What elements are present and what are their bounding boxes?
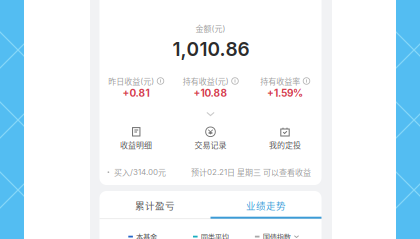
staticText: +1.59% xyxy=(267,87,303,99)
staticText: 预计02.21日 星期三 可以查看收益 xyxy=(191,166,311,178)
staticText: 1,010.86 xyxy=(172,37,249,60)
staticText: 业绩走势 xyxy=(246,198,286,212)
staticText: 买入/314.00元 xyxy=(114,166,166,178)
button[interactable]: 累计盈亏 xyxy=(99,191,210,219)
staticText: 本基金 xyxy=(136,231,157,239)
staticText: 持有收益率 xyxy=(260,75,300,87)
button[interactable]: 收益明细 xyxy=(99,122,173,154)
button[interactable]: 业绩走势 xyxy=(210,191,321,219)
staticText: 持有收益(元) xyxy=(183,75,229,87)
button[interactable]: 国债指数 xyxy=(255,232,299,239)
staticText: 国债指数 xyxy=(263,231,291,239)
staticText: 我的定投 xyxy=(269,139,301,150)
button[interactable]: 本基金 xyxy=(128,232,157,239)
staticText: +10.88 xyxy=(193,87,227,99)
button[interactable]: 收起 xyxy=(193,107,227,121)
staticText: +0.81 xyxy=(122,87,149,99)
staticText: 同类平均 xyxy=(201,231,229,239)
staticText: 交易记录 xyxy=(194,139,226,150)
button[interactable]: 同类平均 xyxy=(193,232,229,239)
staticText: 累计盈亏 xyxy=(135,198,175,212)
staticText: 收益明细 xyxy=(120,139,152,150)
staticText: 昨日收益(元) xyxy=(108,75,154,87)
staticText: 金额(元) xyxy=(195,22,225,34)
button[interactable]: 交易记录 xyxy=(173,122,247,154)
button[interactable]: 我的定投 xyxy=(248,122,322,154)
